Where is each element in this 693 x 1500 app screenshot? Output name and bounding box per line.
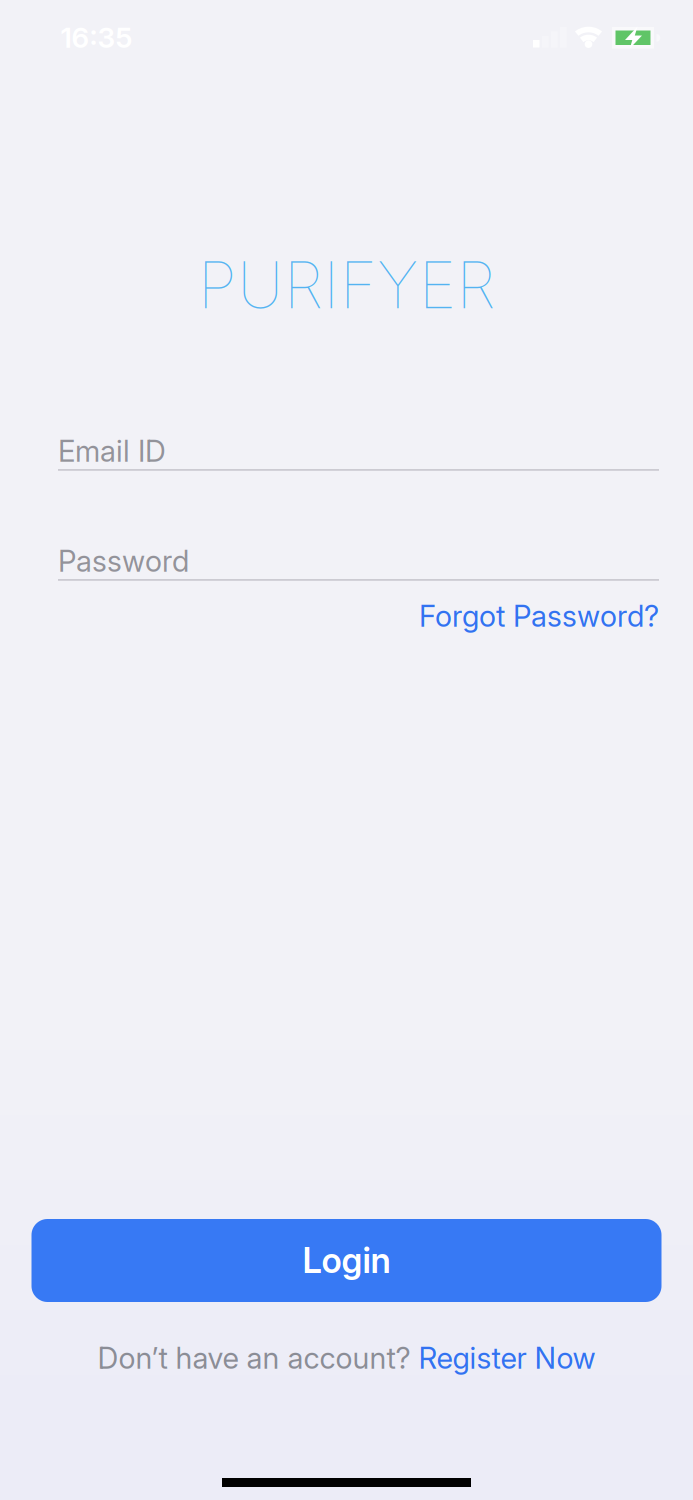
staticText: Email ID [58,434,166,468]
staticText: Don’t have an account? [97,1341,418,1375]
staticText: 16:35 [60,21,132,54]
button[interactable]: Login [31,1219,661,1302]
button[interactable]: Email ID [58,419,659,483]
button[interactable]: Forgot Password? [419,599,659,633]
staticText: Register Now [418,1341,595,1375]
staticText: Password [58,544,189,578]
button[interactable]: Password [58,529,659,593]
staticText: Forgot Password? [419,599,659,633]
button[interactable]: Register Now [418,1341,595,1375]
staticText: Login [302,1240,390,1281]
staticText: PURIFYER [198,247,495,323]
